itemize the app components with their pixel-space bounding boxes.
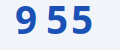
staticText: 9	[15, 0, 37, 45]
staticText: 5	[46, 0, 68, 45]
staticText: 5	[71, 0, 93, 45]
